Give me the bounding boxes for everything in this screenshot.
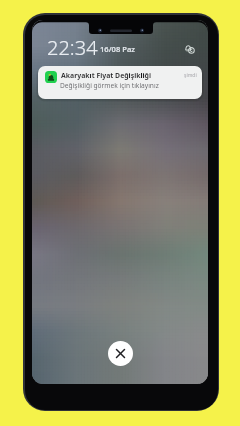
- staticText: 16/08 Paz: [100, 44, 135, 54]
- button[interactable]: Notification settings: [184, 43, 196, 55]
- button[interactable]: Akaryakıt Fiyat Değişikliği: [38, 66, 202, 99]
- staticText: şimdi: [184, 72, 197, 79]
- staticText: Akaryakıt Fiyat Değişikliği: [61, 71, 152, 80]
- staticText: Değişikliği görmek için tıklayınız: [60, 81, 159, 90]
- button[interactable]: Close: [108, 341, 133, 366]
- staticText: 22:34: [47, 34, 98, 61]
